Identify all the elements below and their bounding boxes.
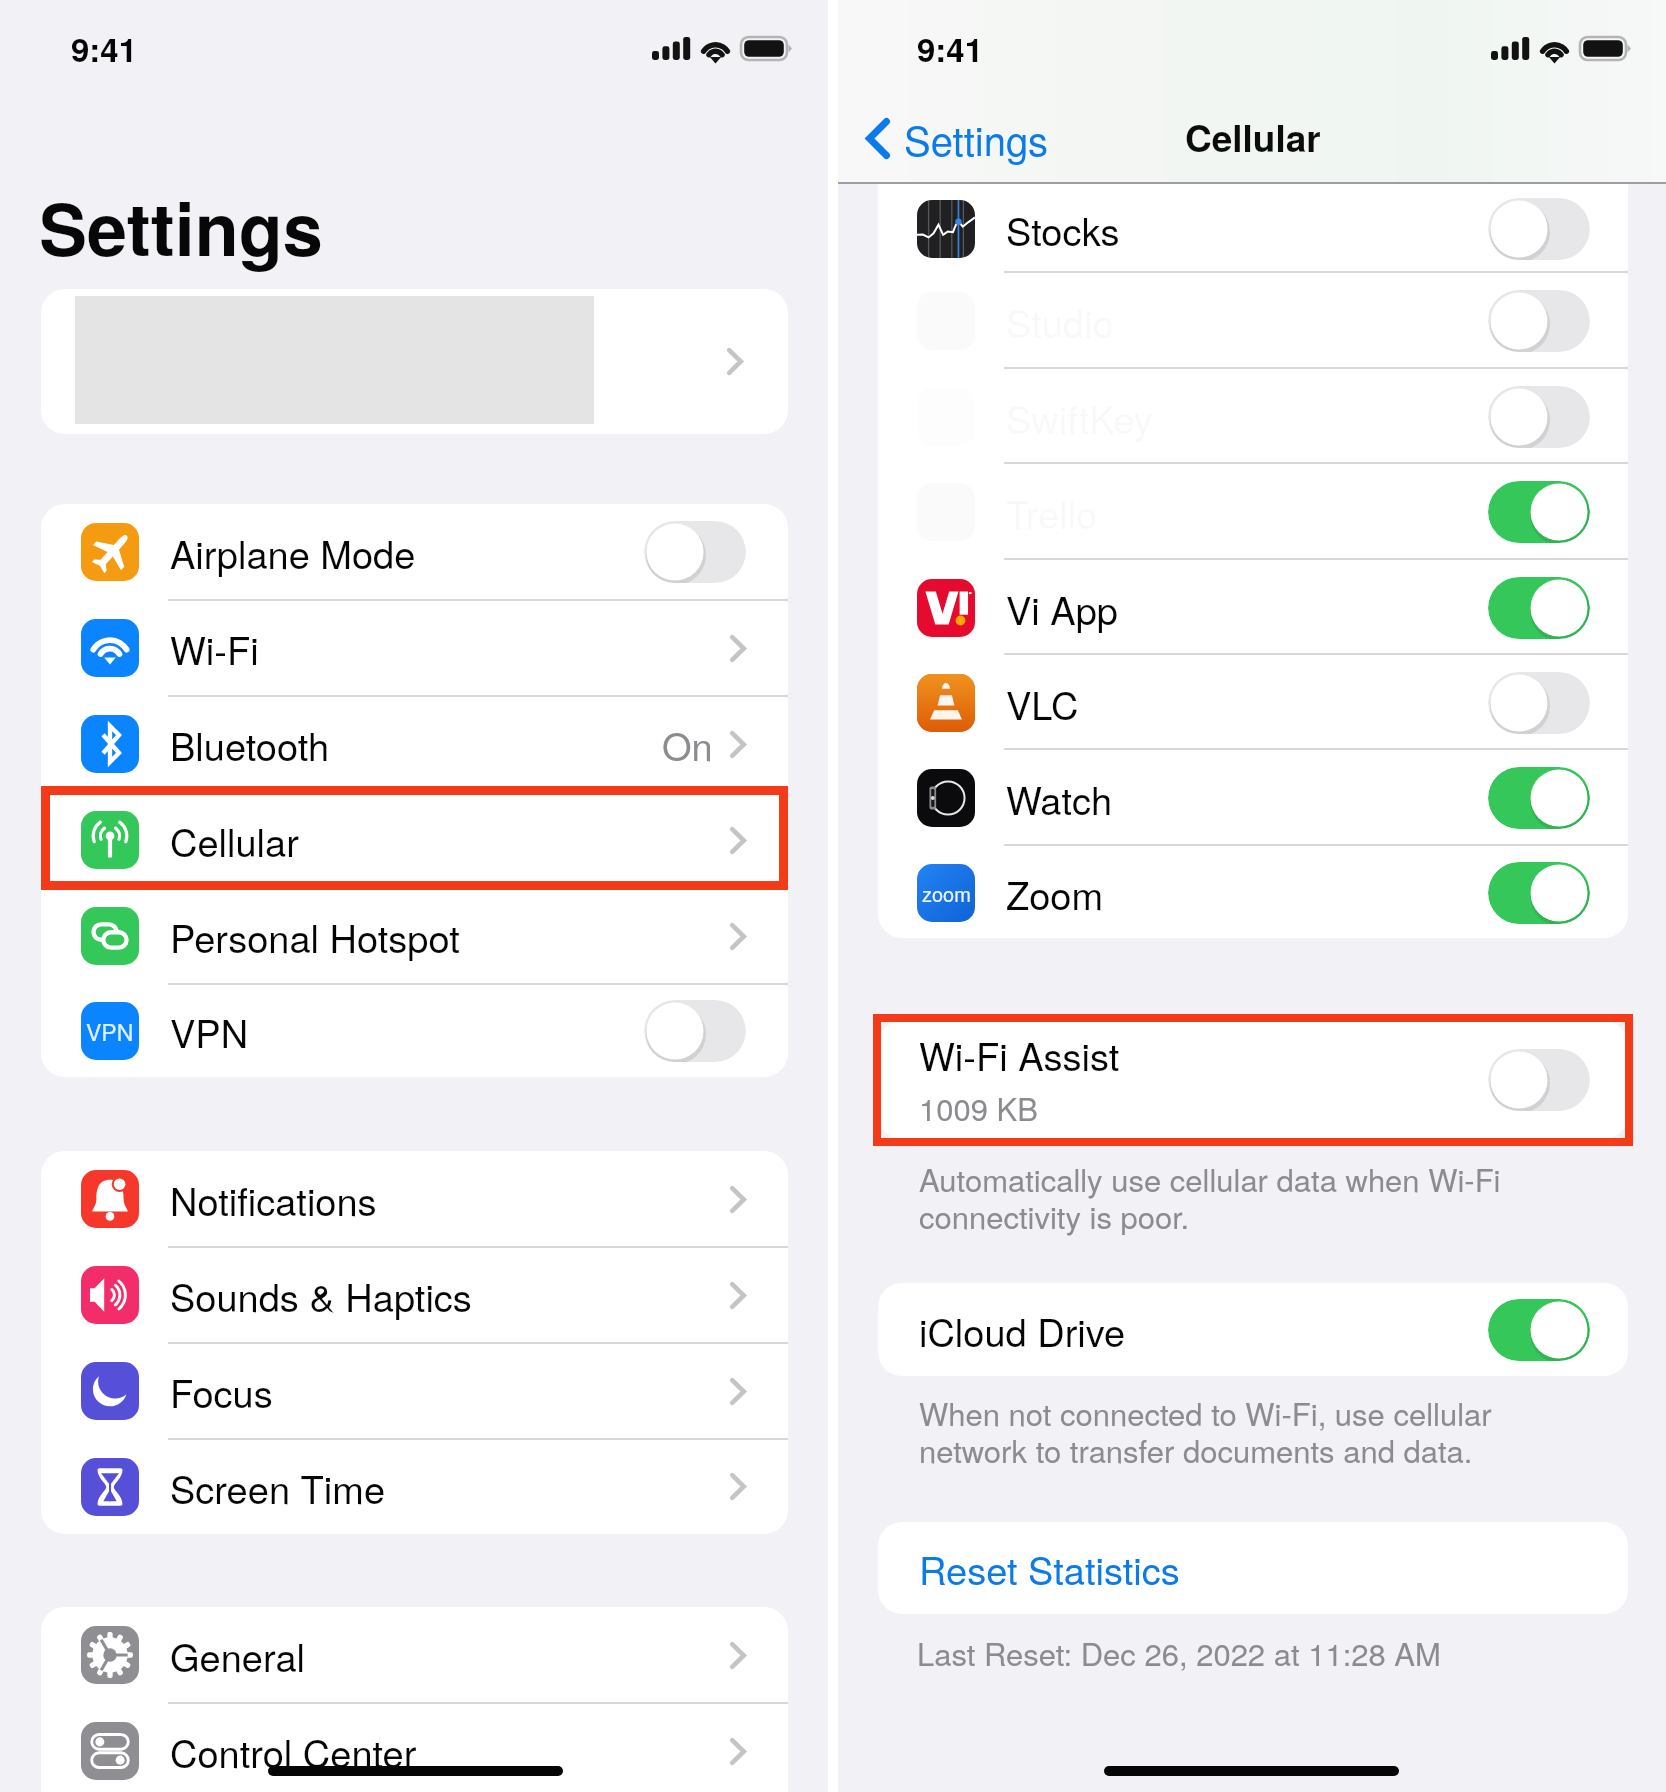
button[interactable]: Personal Hotspot [41,888,788,984]
button[interactable]: Reset Statistics [878,1522,1628,1614]
staticText: Screen Time [170,1460,386,1514]
staticText: Airplane Mode [170,525,416,579]
staticText: 9:41 [71,25,138,72]
button[interactable]: Airplane Mode, off [644,521,746,583]
staticText: Automatically use cellular data when Wi-… [919,1156,1619,1238]
staticText: Cellular [170,813,299,867]
staticText: VPN [86,1015,134,1048]
button[interactable]: VLC, off [1488,672,1590,734]
button[interactable]: Watch, on [1488,767,1590,829]
button[interactable]: Screen Time [41,1439,788,1534]
staticText: iCloud Drive [919,1303,1126,1357]
button[interactable]: Wi-Fi Assist, off [1488,1049,1590,1111]
staticText: Cellular [1185,110,1321,163]
staticText: zoom [922,879,971,908]
button[interactable]: Airplane Mode [41,504,788,600]
staticText: Zoom [1006,866,1104,920]
staticText: Watch [1006,771,1113,825]
staticText: Control Center [170,1724,417,1778]
button[interactable]: Trello, on [1488,481,1590,543]
button[interactable]: Sounds & Haptics [41,1247,788,1343]
staticText: 1009 KB [919,1085,1038,1129]
button[interactable]: VLC [878,655,1628,750]
button[interactable]: SwiftKey, off [1488,386,1590,448]
button[interactable]: Cellular [41,792,788,888]
staticText: Personal Hotspot [170,909,460,963]
staticText: Bluetooth [170,717,330,771]
button[interactable]: VPN [41,984,788,1077]
staticText: 9:41 [917,25,984,72]
staticText: Reset Statistics [919,1541,1180,1595]
staticText: VPN [170,1004,249,1058]
button[interactable]: Studio [878,273,1628,369]
button[interactable]: iCloud Drive [878,1283,1628,1376]
button[interactable]: Watch [878,750,1628,846]
staticText: Wi-Fi [170,621,259,675]
staticText: On [662,717,713,771]
button[interactable]: SwiftKey [878,369,1628,464]
button[interactable]: Stocks [878,184,1628,273]
staticText: Focus [170,1364,273,1418]
staticText: General [170,1628,305,1682]
button[interactable]: Stocks, off [1488,198,1590,260]
button[interactable]: Back to Settings [866,110,1049,166]
button[interactable]: Vi App, on [1488,577,1590,639]
button[interactable]: Notifications [41,1151,788,1247]
staticText: VLC [1006,676,1079,730]
button[interactable]: Studio, off [1488,290,1590,352]
button[interactable]: Wi-Fi Assist [878,1021,1628,1139]
button[interactable]: Vi App [878,560,1628,655]
staticText: Vi App [1006,581,1118,635]
staticText: Notifications [170,1172,377,1226]
button[interactable]: iCloud Drive, on [1488,1299,1590,1361]
button[interactable]: Control Center [41,1703,788,1792]
staticText: When not connected to Wi-Fi, use cellula… [919,1390,1619,1472]
staticText: Wi-Fi Assist [919,1027,1120,1081]
button[interactable]: Zoom, on [1488,862,1590,924]
button[interactable]: Bluetooth [41,696,788,792]
staticText: Sounds & Haptics [170,1268,472,1322]
staticText: Settings [904,110,1049,166]
button[interactable]: Apple ID profile [41,289,788,434]
button[interactable]: General [41,1607,788,1703]
button[interactable]: Wi-Fi [41,600,788,696]
button[interactable]: Focus [41,1343,788,1439]
button[interactable]: zoom [878,846,1628,938]
staticText: Stocks [1006,202,1120,256]
staticText: Last Reset: Dec 26, 2022 at 11:28 AM [917,1630,1441,1674]
button[interactable]: VPN, off [644,1000,746,1062]
button[interactable]: Trello [878,464,1628,560]
staticText: Settings [39,175,323,278]
